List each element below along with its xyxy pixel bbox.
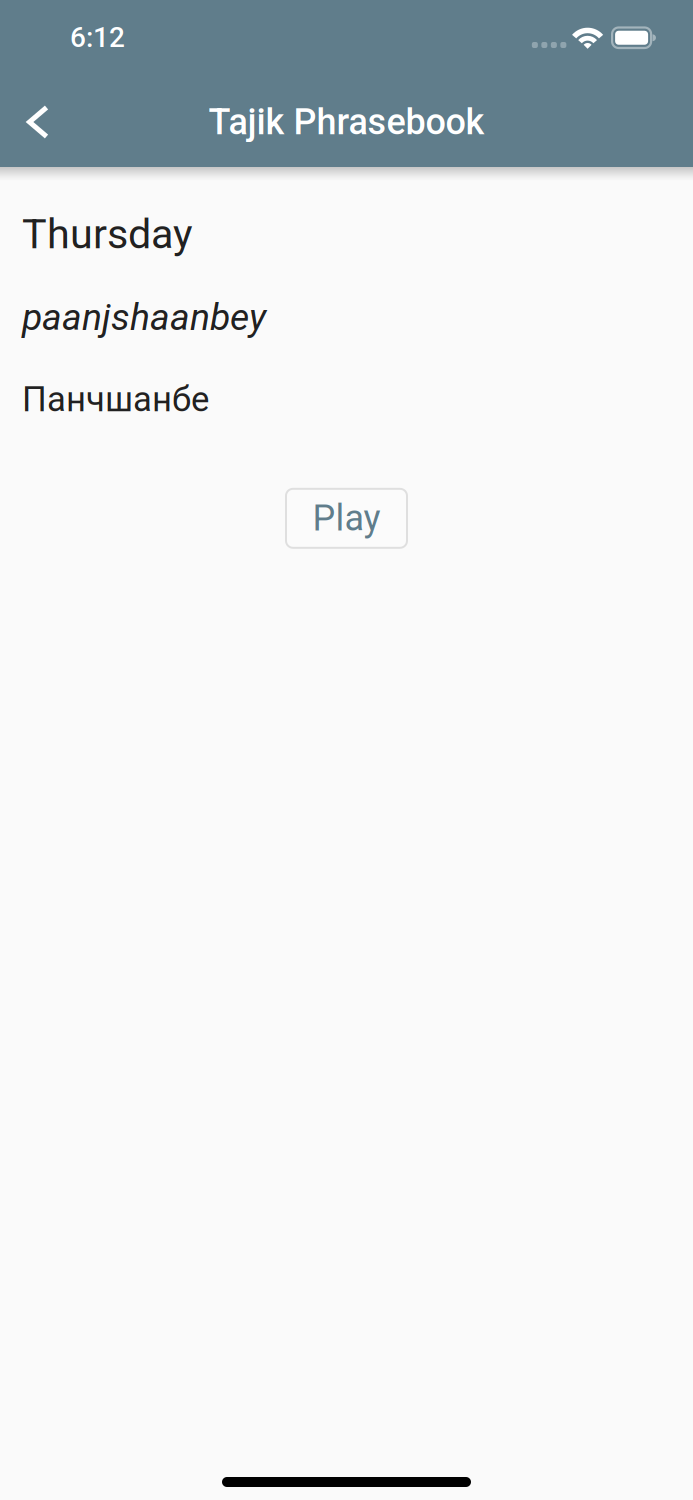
staticText: 6:12: [70, 21, 125, 54]
button[interactable]: Play: [286, 489, 407, 548]
staticText: paanjshaanbey: [22, 295, 266, 339]
staticText: Thursday: [22, 210, 193, 258]
staticText: Tajik Phrasebook: [208, 101, 484, 143]
button[interactable]: Back: [10, 87, 66, 157]
staticText: Панчшанбе: [22, 379, 209, 420]
staticText: Play: [312, 497, 380, 539]
